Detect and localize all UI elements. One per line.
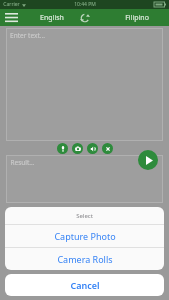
staticText: Carrier — [3, 1, 20, 8]
staticText: Filipino — [125, 13, 149, 23]
button[interactable]: Cancel — [5, 274, 164, 296]
staticText: Camera Rolls — [57, 253, 113, 265]
staticText: Select — [76, 212, 93, 220]
button[interactable]: Speak — [57, 143, 68, 154]
button[interactable]: Camera Rolls — [5, 248, 164, 270]
button[interactable]: English — [28, 9, 76, 26]
button[interactable]: Swap languages — [77, 10, 93, 26]
button[interactable]: Camera — [72, 143, 83, 154]
staticText: 10:44 PM — [74, 1, 96, 8]
staticText: Capture Photo — [54, 230, 116, 242]
staticText: English — [40, 13, 64, 23]
button[interactable]: Menu — [2, 10, 20, 25]
button[interactable]: Capture Photo — [5, 225, 164, 247]
staticText: Cancel — [70, 279, 100, 291]
staticText: Result... — [10, 158, 35, 167]
button[interactable]: Play audio — [87, 143, 98, 154]
button[interactable]: Translate — [138, 150, 158, 170]
button[interactable]: Result... — [6, 155, 163, 203]
button[interactable]: Clear — [102, 143, 113, 154]
staticText: Enter text... — [10, 31, 45, 40]
button[interactable]: Enter text... — [6, 28, 163, 141]
button[interactable]: Filipino — [113, 9, 161, 26]
